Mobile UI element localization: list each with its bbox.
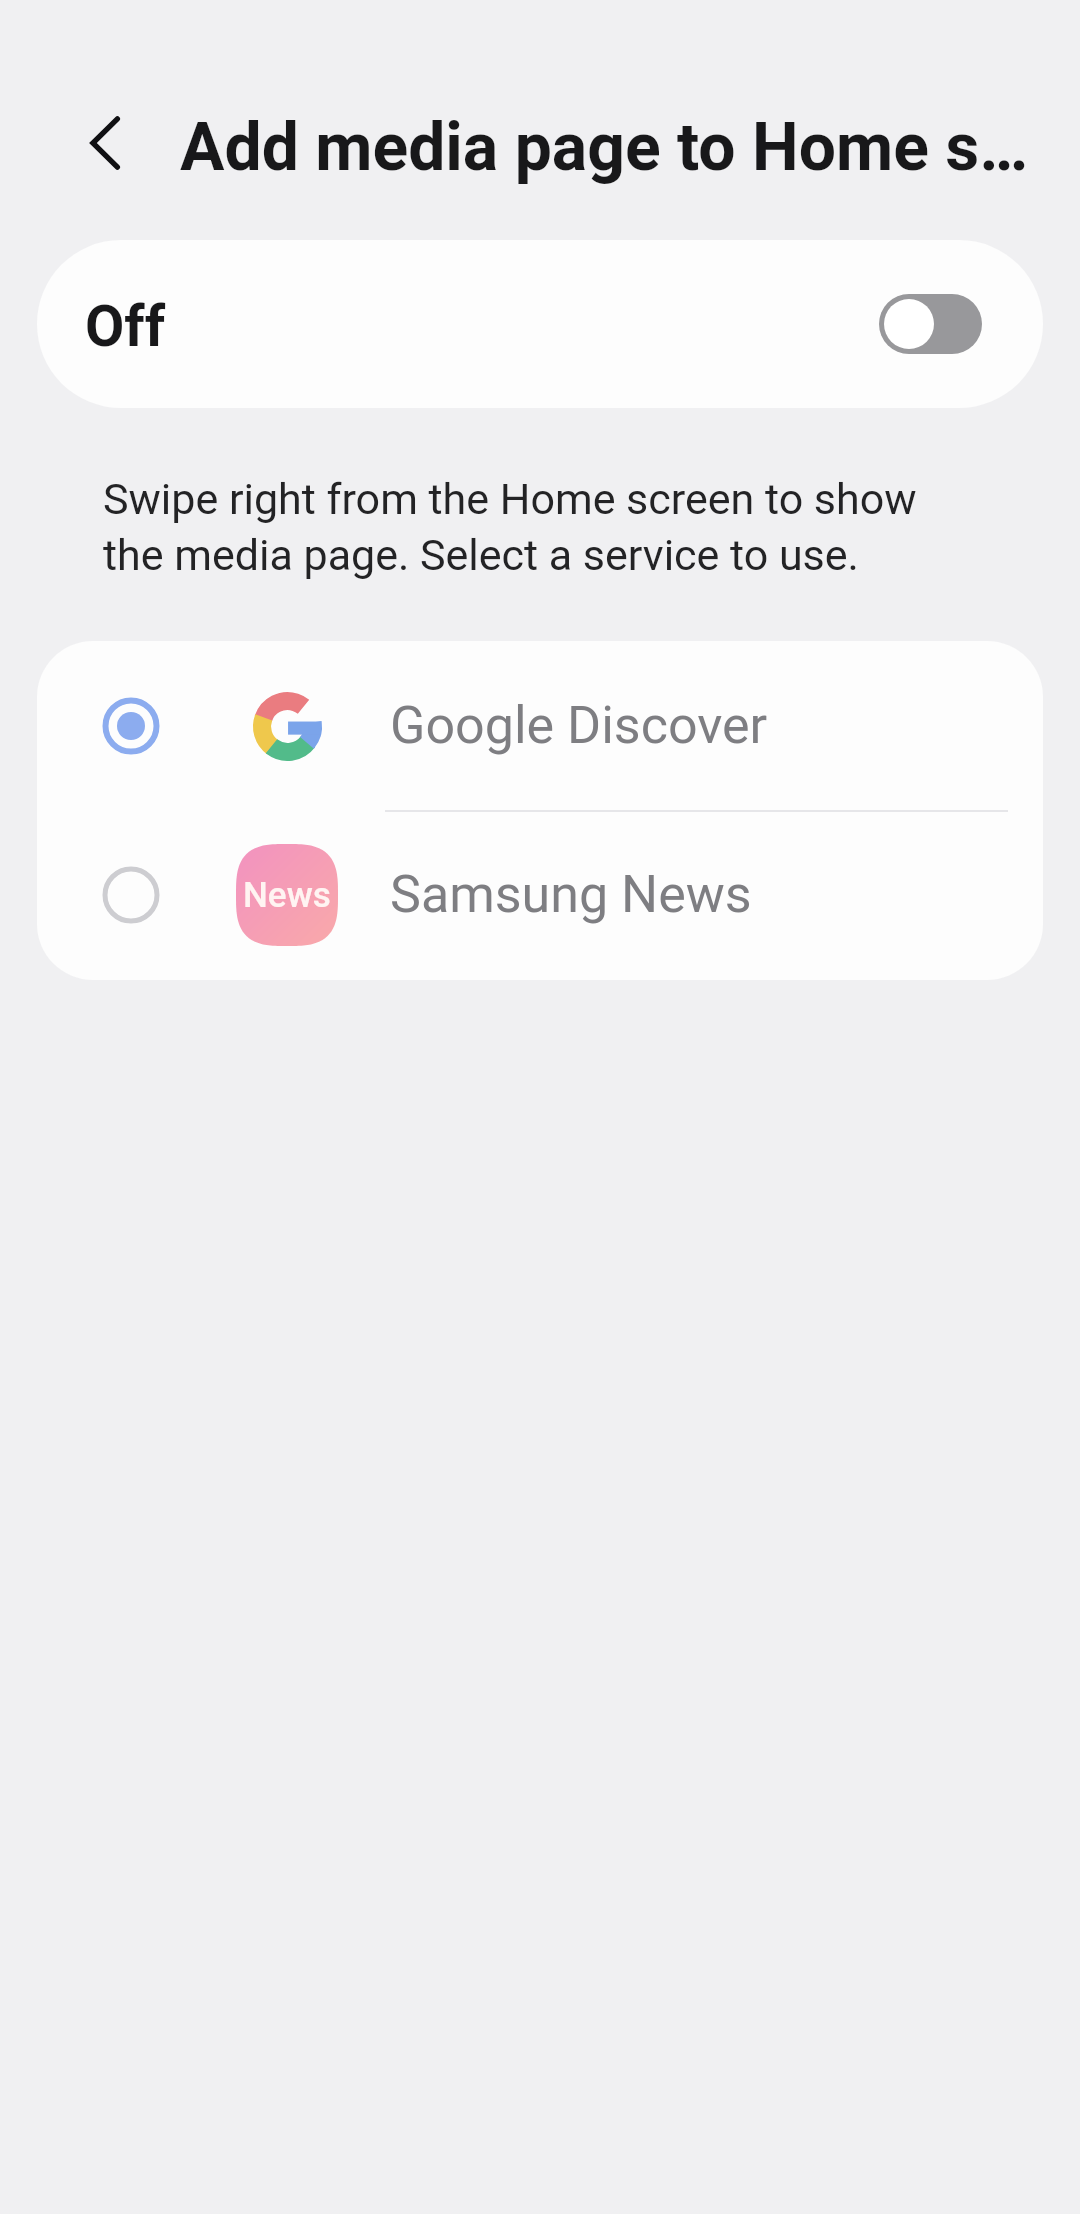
- staticText: Samsung News: [390, 864, 752, 925]
- staticText: Add media page to Home s…: [180, 109, 1029, 186]
- staticText: Swipe right from the Home screen to show…: [103, 474, 925, 581]
- button[interactable]: Off: [37, 240, 1043, 408]
- staticText: Google Discover: [390, 695, 768, 756]
- button[interactable]: Navigate up: [74, 112, 136, 174]
- staticText: Off: [85, 293, 166, 360]
- staticText: News: [243, 875, 331, 916]
- button[interactable]: News: [37, 810, 1043, 979]
- button[interactable]: Google Discover: [37, 641, 1043, 810]
